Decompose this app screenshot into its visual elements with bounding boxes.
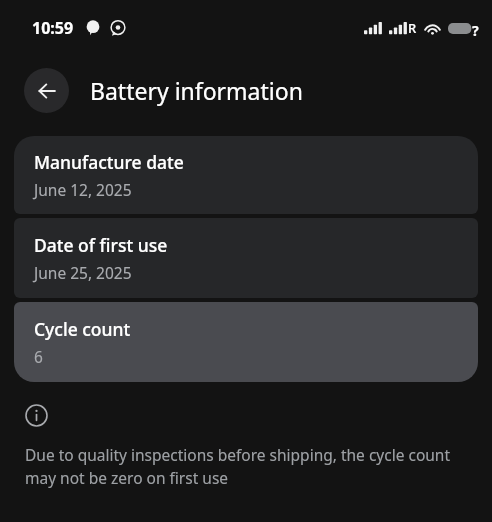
button[interactable]: Manufacture date (14, 136, 478, 214)
staticText: ? (472, 21, 479, 36)
button[interactable]: Date of first use (14, 218, 478, 298)
staticText: Manufacture date (34, 150, 184, 174)
staticText: R (408, 19, 417, 37)
staticText: 10:59 (32, 17, 74, 39)
staticText: 6 (34, 346, 43, 367)
staticText: June 12, 2025 (34, 179, 132, 200)
button[interactable]: Back (24, 68, 69, 113)
staticText: June 25, 2025 (34, 262, 132, 283)
staticText: Battery information (90, 75, 303, 106)
staticText: Due to quality inspections before shippi… (25, 444, 470, 489)
staticText: Date of first use (34, 233, 168, 257)
button[interactable]: Cycle count (14, 302, 478, 382)
staticText: Cycle count (34, 317, 131, 341)
